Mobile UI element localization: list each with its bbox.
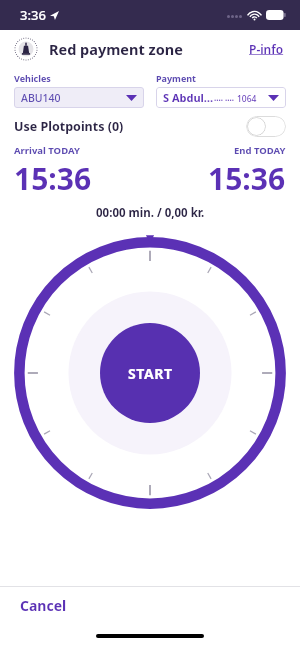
staticText: Red payment zone [49,39,183,59]
staticText: S Abdul… [163,90,214,105]
staticText: ABU140 [21,91,61,105]
staticText: 3:36 [20,6,46,24]
staticText: Cancel [20,596,67,615]
staticText: Use Plotpoints (0) [14,118,124,135]
button[interactable]: Use Plotpoints toggle [246,116,286,137]
button[interactable]: P-info [247,37,286,61]
staticText: ···· ···· [214,94,235,105]
button[interactable]: START [100,323,200,423]
button[interactable]: Cancel [16,590,71,621]
staticText: START [128,364,173,383]
button[interactable]: S Abdul… [156,87,286,108]
staticText: 15:36 [208,158,286,199]
staticText: Payment [156,72,197,84]
staticText: Vehicles [14,72,51,84]
staticText: 00:00 min. / 0,00 kr. [96,205,205,221]
staticText: End TODAY [234,144,286,157]
button[interactable]: ABU140 [14,87,144,108]
staticText: 1064 [237,93,257,105]
staticText: P-info [249,41,284,57]
staticText: Arrival TODAY [14,144,80,157]
staticText: 15:36 [14,158,92,199]
